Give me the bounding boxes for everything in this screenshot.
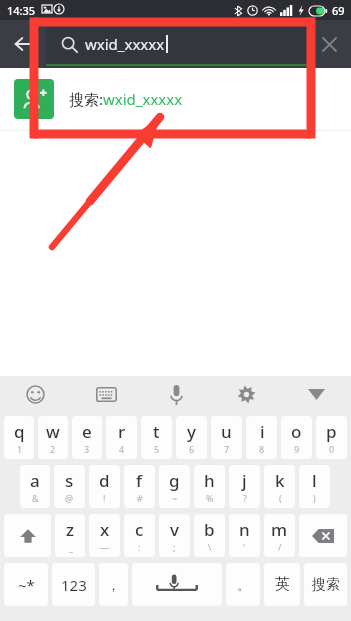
button[interactable]: e bbox=[72, 416, 102, 459]
staticText: 搜索 bbox=[312, 576, 340, 594]
button[interactable]: v bbox=[159, 514, 190, 557]
button[interactable]: c bbox=[124, 514, 155, 557]
button[interactable]: q bbox=[4, 416, 34, 459]
staticText: v bbox=[170, 518, 179, 541]
staticText: o bbox=[291, 420, 302, 443]
button[interactable]: 搜索 bbox=[304, 563, 347, 606]
staticText: w bbox=[46, 420, 60, 443]
button[interactable]: 英 bbox=[264, 563, 300, 606]
staticText: 搜索:wxid_xxxxx bbox=[69, 89, 183, 109]
staticText: 69 bbox=[332, 3, 345, 18]
staticText: 9 bbox=[294, 443, 300, 455]
staticText: 英 bbox=[275, 575, 290, 594]
button[interactable]: 123 bbox=[52, 563, 95, 606]
button[interactable]: l bbox=[299, 465, 330, 508]
button[interactable]: r bbox=[106, 416, 137, 459]
staticText: 2 bbox=[50, 443, 56, 455]
staticText: & bbox=[32, 492, 39, 504]
button[interactable]: Space bbox=[132, 563, 222, 606]
staticText: wxid_xxxxx bbox=[85, 34, 165, 54]
button[interactable]: n bbox=[229, 514, 260, 557]
button[interactable]: Emoji bbox=[0, 376, 71, 413]
staticText: 5 bbox=[154, 443, 160, 455]
staticText: ? bbox=[243, 492, 247, 504]
staticText: : bbox=[138, 541, 141, 553]
button[interactable]: 。 bbox=[226, 563, 260, 606]
staticText: 7 bbox=[224, 443, 230, 455]
button[interactable]: t bbox=[141, 416, 172, 459]
button[interactable]: Backspace bbox=[299, 514, 347, 557]
button[interactable]: x bbox=[89, 514, 120, 557]
button[interactable]: g bbox=[159, 465, 190, 508]
button[interactable]: i bbox=[246, 416, 277, 459]
button[interactable]: Back bbox=[4, 24, 44, 64]
button[interactable]: k bbox=[264, 465, 295, 508]
button[interactable]: z bbox=[55, 514, 85, 557]
staticText: z bbox=[66, 518, 75, 541]
staticText: % bbox=[206, 492, 214, 504]
staticText: 。 bbox=[237, 577, 250, 593]
staticText: ' bbox=[243, 541, 246, 553]
button[interactable]: w bbox=[38, 416, 68, 459]
staticText: 1 bbox=[17, 443, 23, 455]
button[interactable]: p bbox=[316, 416, 347, 459]
staticText: # bbox=[137, 492, 143, 504]
staticText: 14:35 bbox=[7, 3, 36, 18]
button[interactable]: ， bbox=[99, 563, 128, 606]
staticText: q bbox=[14, 420, 25, 443]
button[interactable]: y bbox=[176, 416, 207, 459]
staticText: r bbox=[118, 420, 126, 443]
staticText: g bbox=[169, 469, 180, 492]
button[interactable]: o bbox=[281, 416, 312, 459]
staticText: t bbox=[153, 420, 160, 443]
button[interactable]: Hide keyboard bbox=[281, 376, 351, 413]
button[interactable]: ~* bbox=[4, 563, 48, 606]
staticText: \ bbox=[208, 541, 212, 553]
staticText: 4 bbox=[119, 443, 125, 455]
staticText: ; bbox=[173, 541, 176, 553]
staticText: 8 bbox=[259, 443, 265, 455]
button[interactable]: Shift bbox=[4, 514, 51, 557]
staticText: c bbox=[135, 518, 144, 541]
staticText: f bbox=[136, 469, 143, 492]
button[interactable]: s bbox=[54, 465, 85, 508]
button[interactable]: 搜索:wxid_xxxxx bbox=[0, 68, 351, 130]
staticText: 123 bbox=[61, 575, 87, 595]
staticText: n bbox=[239, 518, 250, 541]
button[interactable]: u bbox=[211, 416, 242, 459]
staticText: j bbox=[242, 469, 247, 492]
staticText: m bbox=[271, 518, 288, 541]
staticText: i bbox=[260, 420, 265, 443]
staticText: 6 bbox=[189, 443, 195, 455]
staticText: / bbox=[278, 541, 282, 553]
button[interactable]: a bbox=[20, 465, 50, 508]
staticText: x bbox=[100, 518, 110, 541]
staticText: e bbox=[82, 420, 92, 443]
staticText: 0 bbox=[329, 443, 335, 455]
button[interactable]: Voice input bbox=[141, 376, 211, 413]
staticText: d bbox=[99, 469, 110, 492]
staticText: k bbox=[275, 469, 285, 492]
button[interactable]: d bbox=[89, 465, 120, 508]
staticText: @ bbox=[65, 492, 74, 504]
button[interactable]: m bbox=[264, 514, 295, 557]
staticText: s bbox=[65, 469, 74, 492]
staticText: ~ bbox=[172, 492, 178, 504]
button[interactable]: Clear bbox=[312, 27, 346, 61]
button[interactable]: f bbox=[124, 465, 155, 508]
staticText: ~* bbox=[18, 575, 35, 595]
button[interactable]: Settings bbox=[211, 376, 281, 413]
staticText: — bbox=[100, 541, 110, 553]
button[interactable]: b bbox=[194, 514, 225, 557]
staticText: ( bbox=[279, 492, 282, 504]
button[interactable]: h bbox=[194, 465, 225, 508]
staticText: y bbox=[187, 420, 196, 443]
button[interactable]: wxid_xxxxx bbox=[46, 22, 307, 66]
staticText: ， bbox=[107, 577, 120, 593]
staticText: ) bbox=[313, 492, 316, 504]
button[interactable]: Keyboard layout bbox=[71, 376, 141, 413]
staticText: p bbox=[326, 420, 337, 443]
staticText: ! bbox=[103, 492, 106, 504]
button[interactable]: j bbox=[229, 465, 260, 508]
staticText: 3 bbox=[84, 443, 90, 455]
